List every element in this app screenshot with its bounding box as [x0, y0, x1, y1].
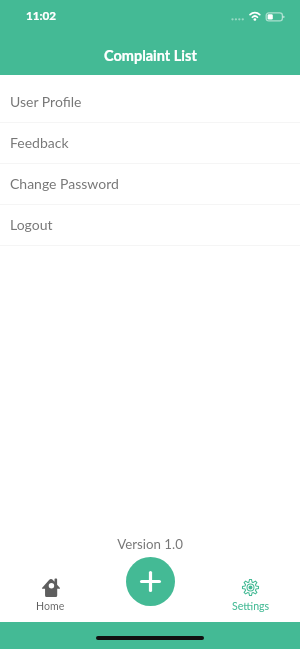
staticText: Version 1.0 — [117, 536, 183, 552]
button[interactable]: Settings — [220, 564, 281, 620]
button[interactable]: Home — [20, 564, 81, 620]
button[interactable]: Add complaint — [126, 557, 175, 606]
staticText: 11:02 — [26, 8, 57, 22]
button[interactable]: Logout — [0, 205, 300, 246]
staticText: Home — [36, 600, 65, 613]
button[interactable]: Feedback — [0, 123, 300, 164]
button[interactable]: Change Password — [0, 164, 300, 205]
button[interactable]: User Profile — [0, 82, 300, 123]
staticText: Complaint List — [104, 47, 197, 64]
staticText: Change Password — [10, 175, 119, 192]
staticText: Feedback — [10, 134, 69, 151]
staticText: Settings — [232, 600, 270, 613]
staticText: User Profile — [10, 93, 82, 110]
staticText: Logout — [10, 216, 53, 233]
